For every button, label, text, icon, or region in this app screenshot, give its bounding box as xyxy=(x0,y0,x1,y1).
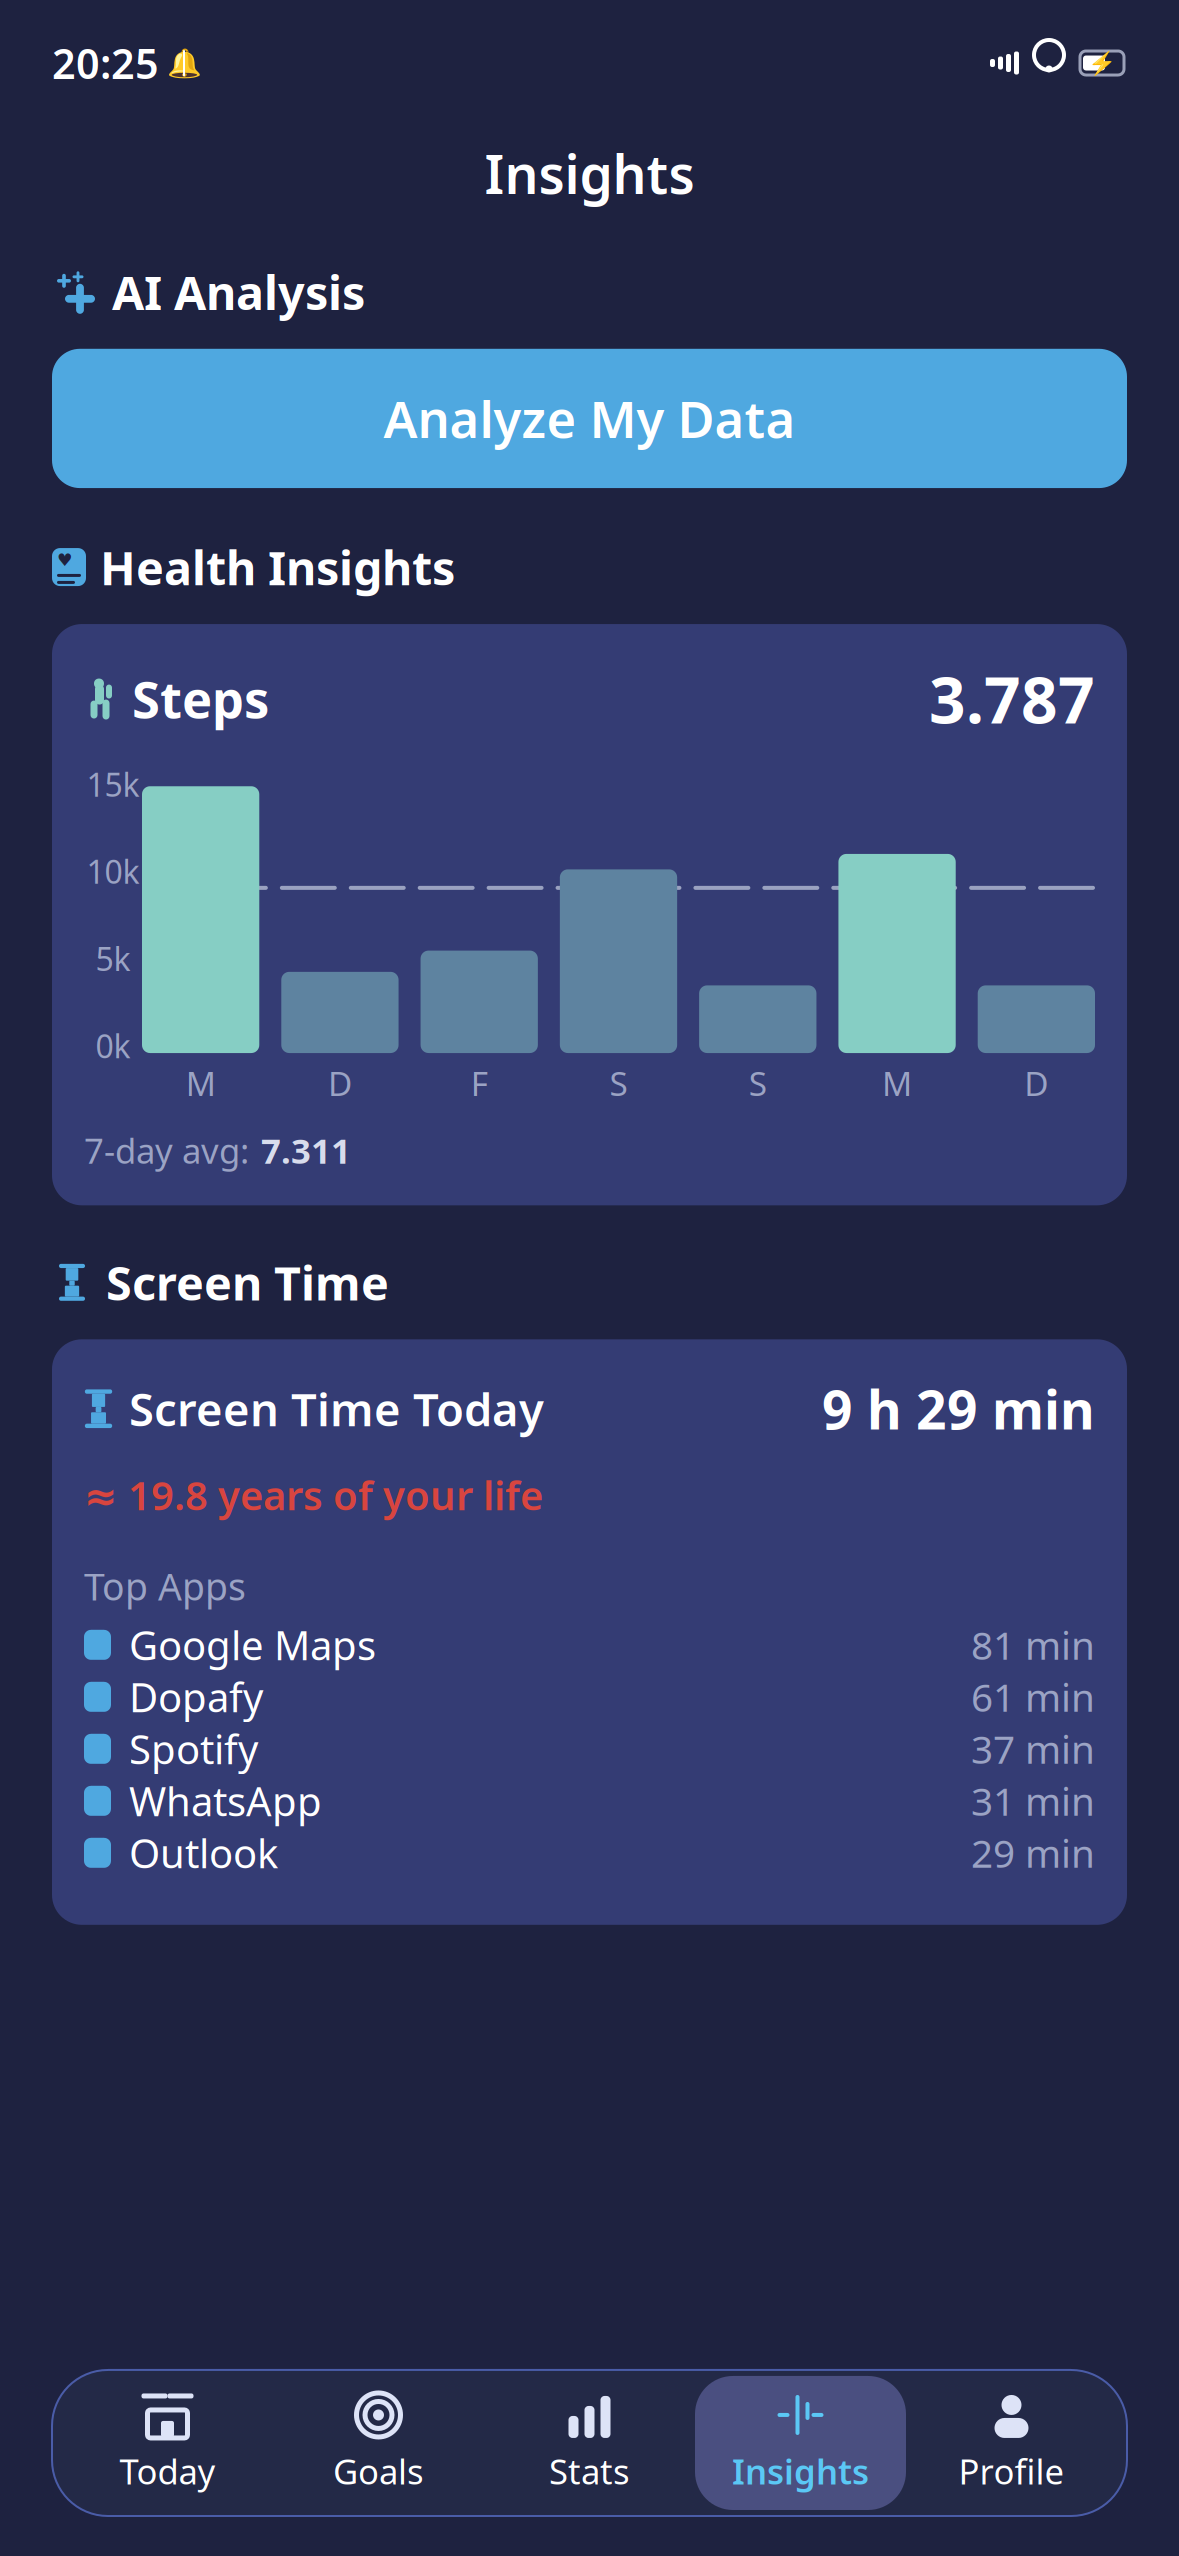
staticText: Goals xyxy=(333,2448,424,2494)
staticText: Insights xyxy=(732,2448,869,2494)
staticText: Dopafy xyxy=(129,1670,263,1723)
staticText: 31 min xyxy=(971,1775,1095,1826)
staticText: Outlook xyxy=(129,1826,278,1879)
staticText: F xyxy=(471,1061,488,1105)
staticText: 0k xyxy=(95,1024,130,1067)
staticText: 61 min xyxy=(971,1671,1095,1722)
staticText: 37 min xyxy=(971,1723,1095,1774)
staticText: Steps xyxy=(132,665,269,732)
staticText: 81 min xyxy=(971,1619,1095,1670)
button[interactable]: Insights xyxy=(695,2376,906,2510)
button[interactable]: Stats xyxy=(484,2376,695,2510)
staticText: Google Maps xyxy=(129,1618,376,1671)
button[interactable]: Profile xyxy=(906,2376,1117,2510)
staticText: WhatsApp xyxy=(129,1774,322,1827)
staticText: AI Analysis xyxy=(112,261,365,323)
staticText: Health Insights xyxy=(100,536,455,598)
staticText: Screen Time Today xyxy=(129,1379,544,1439)
staticText: ♥ xyxy=(57,550,73,570)
staticText: Today xyxy=(119,2448,215,2494)
staticText: Insights xyxy=(484,138,694,209)
staticText: 3.787 xyxy=(929,656,1095,741)
staticText: Profile xyxy=(958,2448,1064,2494)
staticText: 20:25 xyxy=(52,36,159,90)
staticText: 🔔 xyxy=(166,47,201,79)
staticText: 10k xyxy=(86,850,139,893)
staticText: 7-day avg: xyxy=(84,1127,249,1173)
staticText: Spotify xyxy=(129,1722,258,1775)
staticText: Top Apps xyxy=(84,1561,246,1611)
button[interactable]: Today xyxy=(62,2376,273,2510)
staticText: 7.311 xyxy=(261,1127,351,1173)
button[interactable]: Goals xyxy=(273,2376,484,2510)
staticText: Analyze My Data xyxy=(383,385,795,452)
staticText: D xyxy=(328,1061,352,1105)
button[interactable]: Analyze My Data xyxy=(0,349,1179,488)
staticText: 9 h 29 min xyxy=(822,1373,1095,1444)
staticText: M xyxy=(186,1061,216,1105)
staticText: M xyxy=(882,1061,912,1105)
staticText: ⚡ xyxy=(1088,50,1116,76)
staticText: ≈ 19.8 years of your life xyxy=(84,1468,543,1521)
staticText: 29 min xyxy=(971,1827,1095,1878)
staticText: Screen Time xyxy=(106,1251,389,1313)
staticText: S xyxy=(609,1061,627,1105)
staticText: Stats xyxy=(549,2448,630,2494)
staticText: 5k xyxy=(95,937,130,980)
staticText: 15k xyxy=(86,763,139,805)
staticText: S xyxy=(749,1061,767,1105)
staticText: D xyxy=(1024,1061,1048,1105)
